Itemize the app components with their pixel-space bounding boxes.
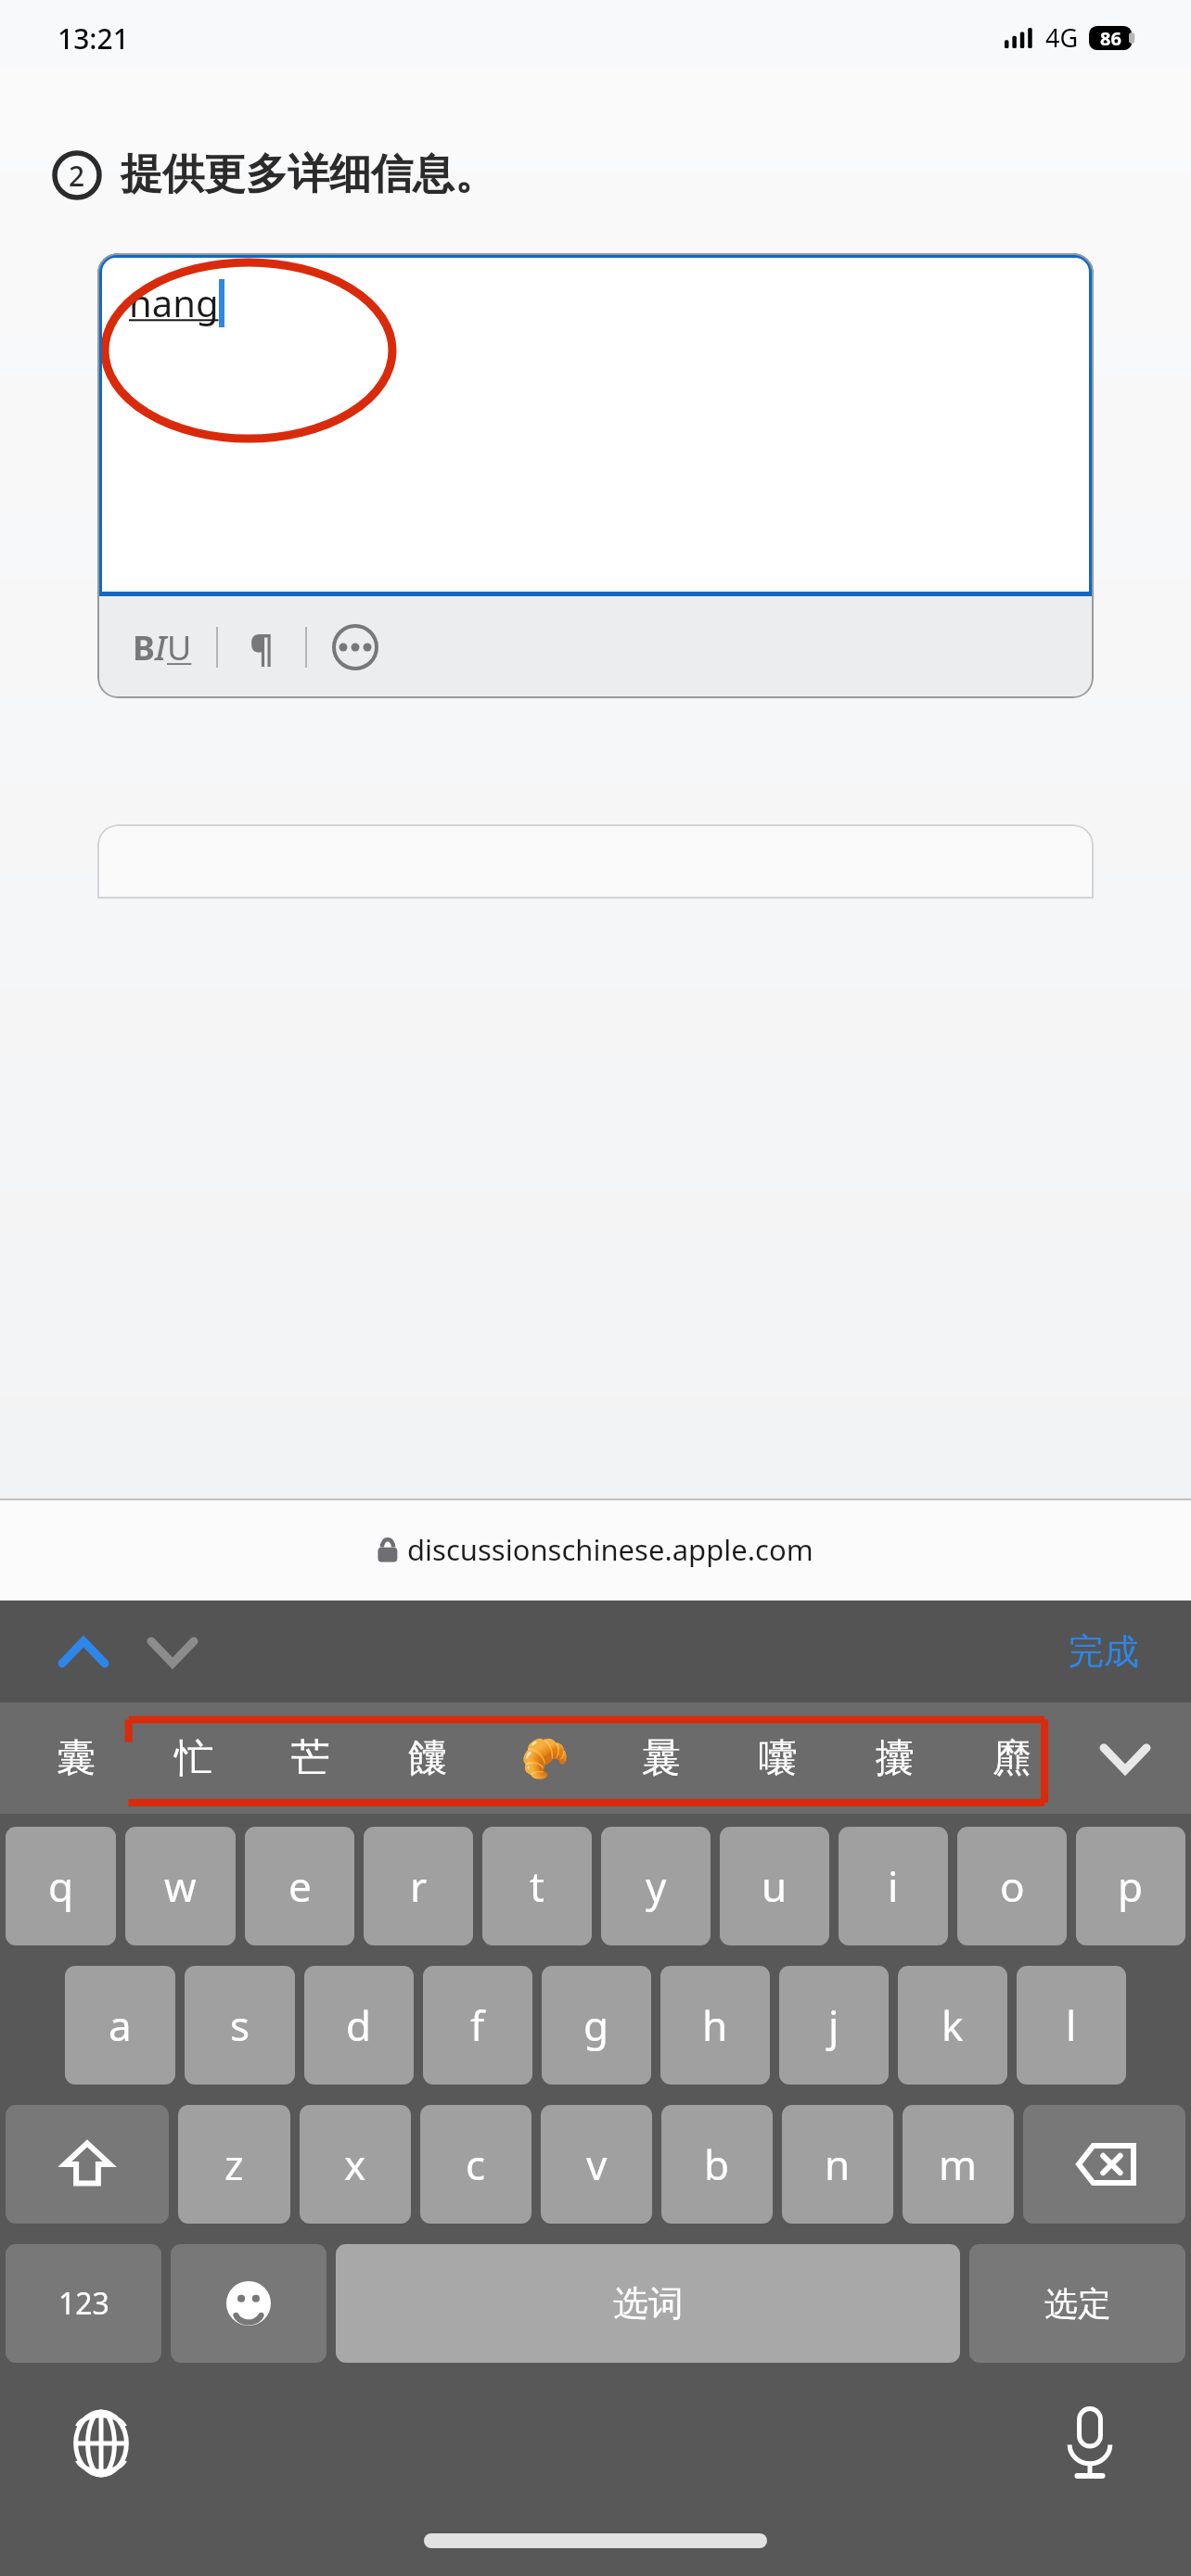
button[interactable]: c [420, 2105, 531, 2224]
button[interactable]: h [660, 1966, 770, 2085]
staticText: 提供更多详细信息。 [121, 148, 496, 201]
staticText: r [410, 1858, 428, 1914]
staticText: v [586, 2136, 608, 2192]
staticText: nang [129, 277, 219, 327]
button[interactable]: 曩 [603, 1702, 720, 1814]
button[interactable]: Expand candidates [1093, 1726, 1158, 1791]
staticText: ¶ [250, 622, 274, 672]
staticText: w [164, 1858, 197, 1914]
button[interactable]: o [957, 1827, 1067, 1945]
staticText: h [702, 1997, 728, 2053]
staticText: x [344, 2136, 366, 2192]
button[interactable]: t [482, 1827, 592, 1945]
staticText: 忙 [174, 1734, 213, 1783]
staticText: t [530, 1858, 544, 1914]
staticText: 选词 [613, 2281, 684, 2326]
staticText: 爢 [992, 1734, 1031, 1783]
staticText: i [888, 1858, 899, 1914]
button[interactable]: z [178, 2105, 290, 2224]
button[interactable]: l [1017, 1966, 1126, 2085]
staticText: k [941, 1997, 964, 2053]
staticText: 🥐 [520, 1736, 570, 1781]
button[interactable]: 忙 [134, 1702, 252, 1814]
staticText: 囔 [759, 1734, 798, 1783]
button[interactable]: r [364, 1827, 473, 1945]
button[interactable]: B [129, 618, 196, 678]
button[interactable]: a [65, 1966, 175, 2085]
button[interactable]: Dictation [1050, 2404, 1130, 2483]
button[interactable]: 饢 [369, 1702, 486, 1814]
staticText: I [155, 625, 167, 670]
staticText: 4G [1045, 20, 1079, 55]
button[interactable]: n [782, 2105, 893, 2224]
button[interactable]: x [300, 2105, 411, 2224]
staticText: o [1000, 1858, 1025, 1914]
staticText: 芒 [291, 1734, 330, 1783]
button[interactable]: ¶ [242, 615, 281, 680]
staticText: m [939, 2136, 978, 2192]
staticText: z [224, 2136, 244, 2192]
staticText: U [167, 625, 192, 670]
staticText: 曩 [642, 1734, 681, 1783]
button[interactable]: More options [331, 623, 379, 671]
staticText: a [109, 1997, 132, 2053]
staticText: g [583, 1997, 609, 2053]
button[interactable]: p [1076, 1827, 1185, 1945]
button[interactable]: 爢 [954, 1702, 1070, 1814]
button[interactable]: u [720, 1827, 829, 1945]
button[interactable]: 囔 [720, 1702, 837, 1814]
staticText: 123 [58, 2283, 109, 2324]
button[interactable]: 🥐 [486, 1702, 603, 1814]
staticText: 选定 [1044, 2283, 1111, 2325]
staticText: d [346, 1997, 372, 2053]
button[interactable]: 123 [6, 2244, 161, 2363]
staticText: p [1118, 1858, 1144, 1914]
button[interactable]: Shift [6, 2105, 169, 2224]
staticText: 攮 [876, 1734, 915, 1783]
button[interactable]: Backspace [1023, 2105, 1185, 2224]
staticText: 囊 [57, 1734, 96, 1783]
button[interactable]: 囊 [17, 1702, 134, 1814]
button[interactable]: v [541, 2105, 652, 2224]
staticText: 2 [69, 157, 85, 195]
staticText: c [466, 2136, 486, 2192]
staticText: n [825, 2136, 851, 2192]
button[interactable]: Emoji [171, 2244, 327, 2363]
staticText: 完成 [1069, 1629, 1139, 1674]
button[interactable]: 选定 [969, 2244, 1185, 2363]
button[interactable]: b [661, 2105, 773, 2224]
button[interactable]: k [898, 1966, 1007, 2085]
button[interactable]: m [903, 2105, 1014, 2224]
staticText: s [230, 1997, 250, 2053]
button[interactable]: s [185, 1966, 295, 2085]
staticText: 86 [1100, 26, 1121, 50]
button[interactable]: y [601, 1827, 711, 1945]
staticText: y [646, 1858, 667, 1914]
staticText: u [762, 1858, 788, 1914]
staticText: l [1066, 1997, 1077, 2053]
button[interactable]: f [423, 1966, 532, 2085]
button[interactable]: nang [97, 253, 1094, 596]
button[interactable]: g [542, 1966, 651, 2085]
staticText: f [470, 1997, 485, 2053]
staticText: B [133, 625, 155, 670]
staticText: q [48, 1858, 74, 1914]
button[interactable]: i [839, 1827, 948, 1945]
button[interactable]: e [245, 1827, 354, 1945]
button[interactable]: 完成 [1061, 1622, 1146, 1681]
staticText: e [288, 1858, 312, 1914]
button[interactable]: Change keyboard [61, 2404, 141, 2483]
button[interactable]: 芒 [252, 1702, 369, 1814]
button[interactable]: 攮 [837, 1702, 954, 1814]
button[interactable]: j [779, 1966, 889, 2085]
staticText: 饢 [408, 1734, 447, 1783]
staticText: 13:21 [58, 19, 129, 57]
button[interactable]: 选词 [336, 2244, 960, 2363]
button[interactable]: d [304, 1966, 414, 2085]
button[interactable]: discussionschinese.apple.com [0, 1498, 1191, 1600]
button[interactable]: Previous field [45, 1613, 122, 1690]
button[interactable]: q [6, 1827, 116, 1945]
staticText: b [704, 2136, 730, 2192]
button[interactable]: Next field [134, 1613, 211, 1690]
button[interactable]: w [125, 1827, 236, 1945]
